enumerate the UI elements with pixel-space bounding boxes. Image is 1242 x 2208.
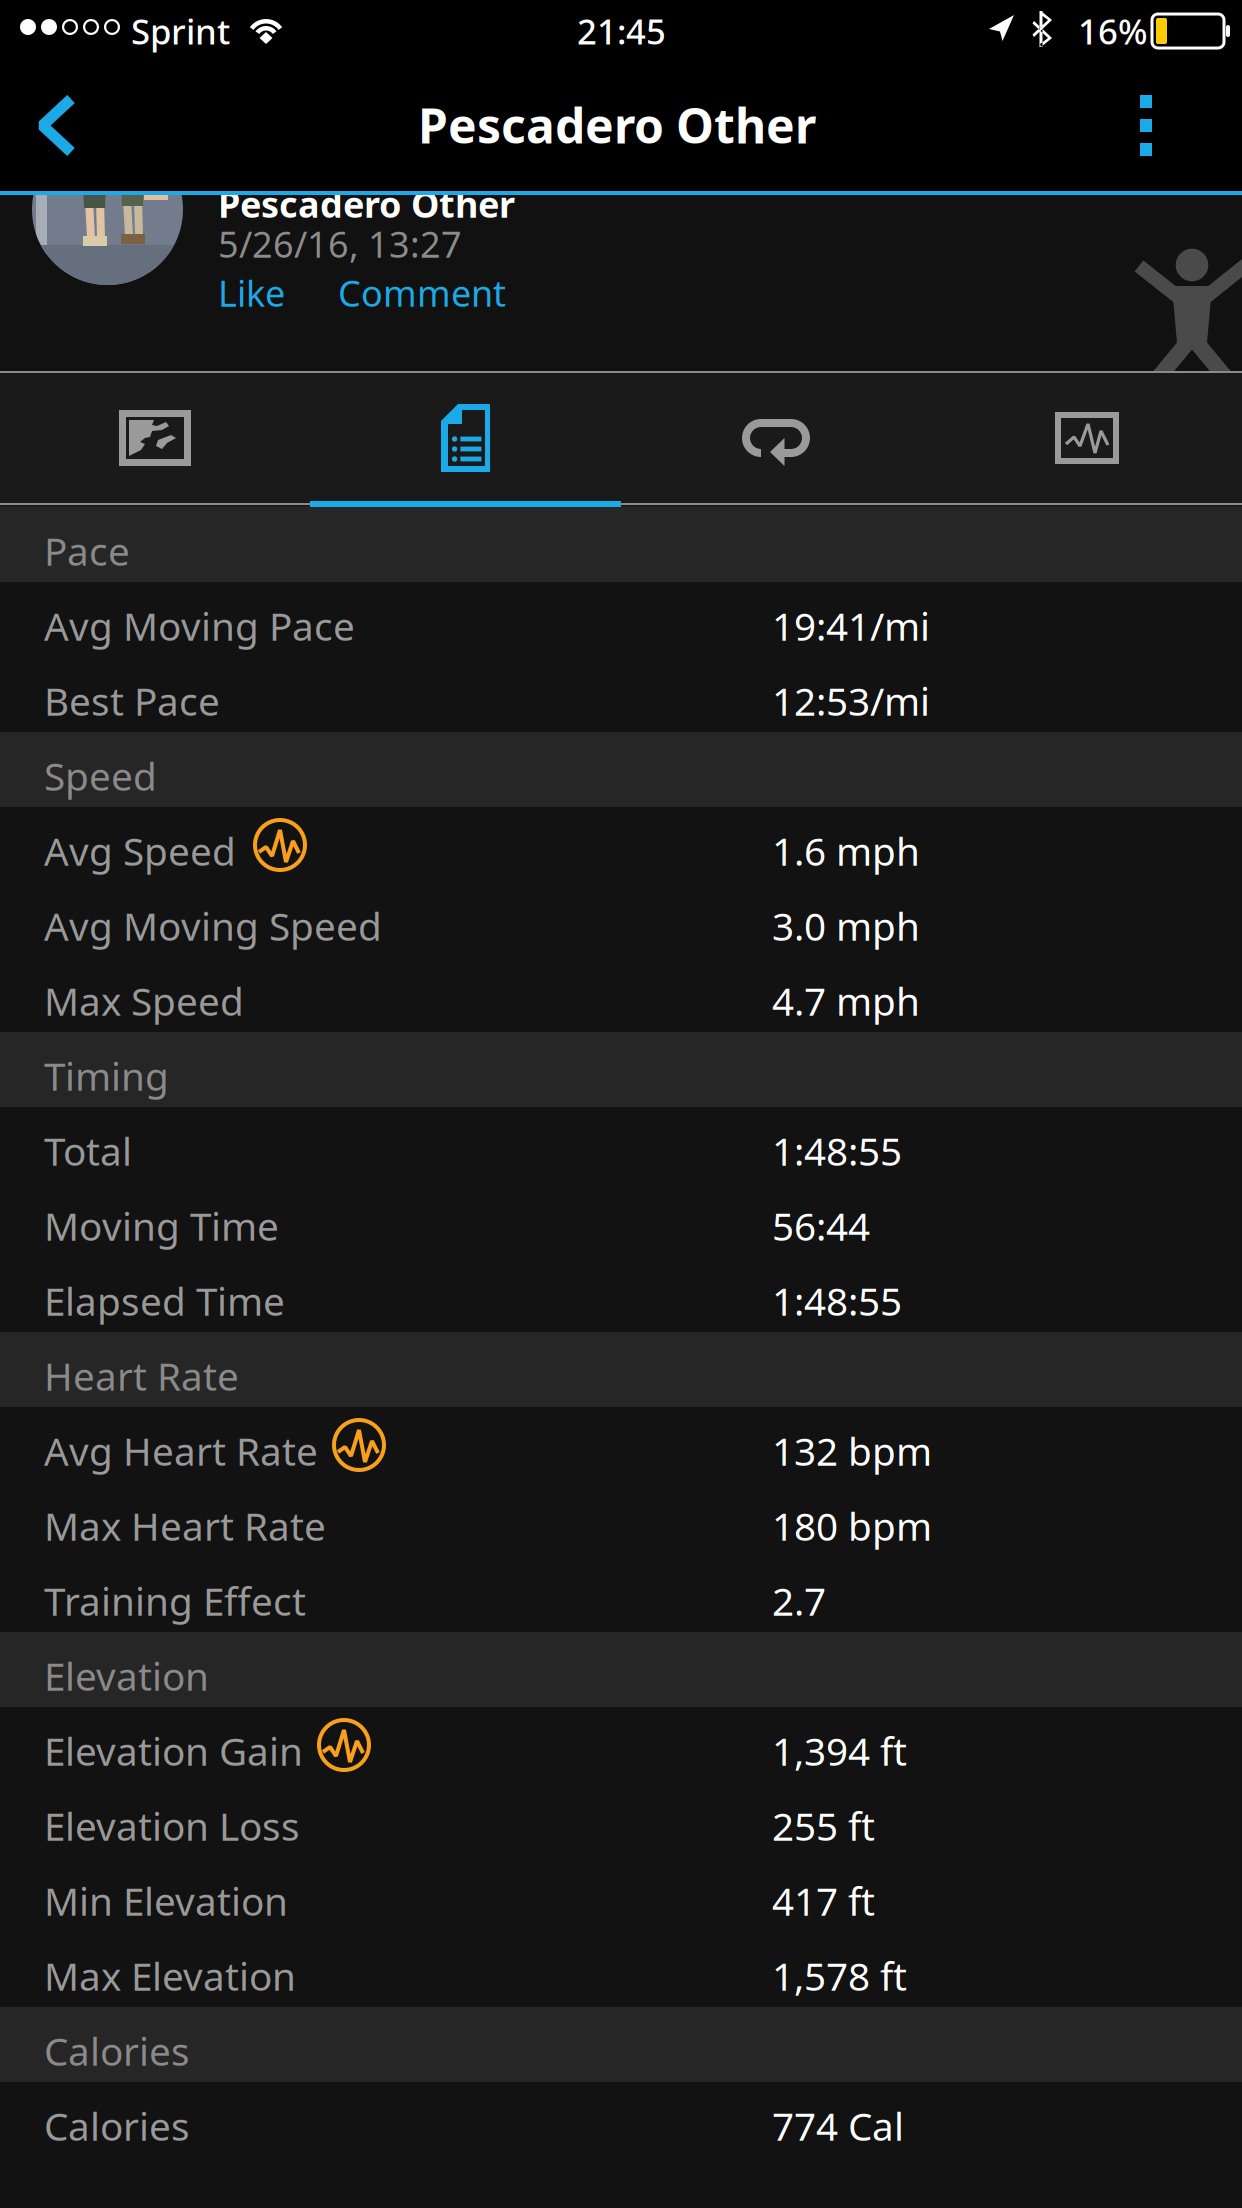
staticText: Avg Heart Rate bbox=[44, 1425, 318, 1476]
staticText: 5/26/16, 13:27 bbox=[218, 220, 462, 268]
button[interactable]: Back bbox=[0, 70, 120, 191]
staticText: 3.0 mph bbox=[772, 900, 920, 951]
button[interactable]: Training Effect bbox=[0, 1557, 1242, 1632]
staticText: Avg Moving Speed bbox=[44, 900, 382, 951]
button[interactable]: Details bbox=[310, 373, 621, 501]
staticText: 21:45 bbox=[577, 8, 666, 54]
button[interactable]: Best Pace bbox=[0, 657, 1242, 732]
button[interactable]: Charts bbox=[931, 373, 1242, 501]
staticText: 56:44 bbox=[772, 1200, 870, 1251]
staticText: Pescadero Other bbox=[218, 180, 515, 228]
staticText: 4.7 mph bbox=[772, 975, 920, 1026]
button[interactable]: Max Speed bbox=[0, 957, 1242, 1032]
staticText: 255 ft bbox=[772, 1800, 875, 1851]
button[interactable]: Elevation Loss bbox=[0, 1782, 1242, 1857]
staticText: 1,394 ft bbox=[772, 1725, 907, 1776]
button[interactable]: More options bbox=[1120, 70, 1230, 191]
staticText: 132 bpm bbox=[772, 1425, 932, 1476]
staticText: Calories bbox=[44, 2100, 190, 2151]
staticText: Heart Rate bbox=[44, 1350, 239, 1401]
staticText: 1.6 mph bbox=[772, 825, 920, 876]
staticText: 1,578 ft bbox=[772, 1950, 907, 2001]
button[interactable]: Total bbox=[0, 1107, 1242, 1182]
staticText: Max Heart Rate bbox=[44, 1500, 326, 1551]
staticText: Pace bbox=[44, 525, 130, 576]
staticText: Avg Moving Pace bbox=[44, 600, 355, 651]
staticText: Avg Speed bbox=[44, 825, 236, 876]
staticText: Speed bbox=[44, 750, 157, 801]
button[interactable]: Laps bbox=[621, 373, 931, 501]
staticText: 16% bbox=[1078, 8, 1148, 54]
staticText: 417 ft bbox=[772, 1875, 875, 1926]
staticText: Pescadero Other bbox=[418, 93, 816, 157]
button[interactable]: Pescadero Other bbox=[218, 180, 515, 228]
staticText: 1:48:55 bbox=[772, 1275, 902, 1326]
button[interactable]: Like bbox=[218, 269, 285, 317]
staticText: 180 bpm bbox=[772, 1500, 932, 1551]
staticText: 1:48:55 bbox=[772, 1125, 902, 1176]
button[interactable]: Avg Heart Rate bbox=[0, 1407, 1242, 1482]
staticText: Like bbox=[218, 269, 285, 317]
button[interactable]: Avg Moving Speed bbox=[0, 882, 1242, 957]
button[interactable]: Map bbox=[0, 373, 310, 501]
button[interactable]: Avg Moving Pace bbox=[0, 582, 1242, 657]
staticText: Sprint bbox=[131, 8, 230, 54]
button[interactable]: Elapsed Time bbox=[0, 1257, 1242, 1332]
staticText: 2.7 bbox=[772, 1575, 826, 1626]
button[interactable]: Comment bbox=[338, 269, 506, 317]
staticText: 19:41/mi bbox=[772, 600, 930, 651]
staticText: 12:53/mi bbox=[772, 675, 930, 726]
button[interactable]: Elevation Gain bbox=[0, 1707, 1242, 1782]
staticText: Calories bbox=[44, 2025, 190, 2076]
button[interactable]: Moving Time bbox=[0, 1182, 1242, 1257]
staticText: Training Effect bbox=[44, 1575, 306, 1626]
staticText: Total bbox=[44, 1125, 132, 1176]
staticText: Elapsed Time bbox=[44, 1275, 285, 1326]
staticText: Best Pace bbox=[44, 675, 220, 726]
staticText: Min Elevation bbox=[44, 1875, 288, 1926]
staticText: Moving Time bbox=[44, 1200, 279, 1251]
staticText: Max Speed bbox=[44, 975, 244, 1026]
staticText: Elevation Loss bbox=[44, 1800, 300, 1851]
button[interactable]: Calories bbox=[0, 2082, 1242, 2157]
staticText: Max Elevation bbox=[44, 1950, 296, 2001]
staticText: Timing bbox=[44, 1050, 169, 1101]
button[interactable]: Min Elevation bbox=[0, 1857, 1242, 1932]
staticText: Elevation Gain bbox=[44, 1725, 303, 1776]
button[interactable]: Avg Speed bbox=[0, 807, 1242, 882]
staticText: Comment bbox=[338, 269, 506, 317]
button[interactable]: Max Elevation bbox=[0, 1932, 1242, 2007]
staticText: 774 Cal bbox=[772, 2100, 904, 2151]
button[interactable]: Max Heart Rate bbox=[0, 1482, 1242, 1557]
staticText: Elevation bbox=[44, 1650, 209, 1701]
